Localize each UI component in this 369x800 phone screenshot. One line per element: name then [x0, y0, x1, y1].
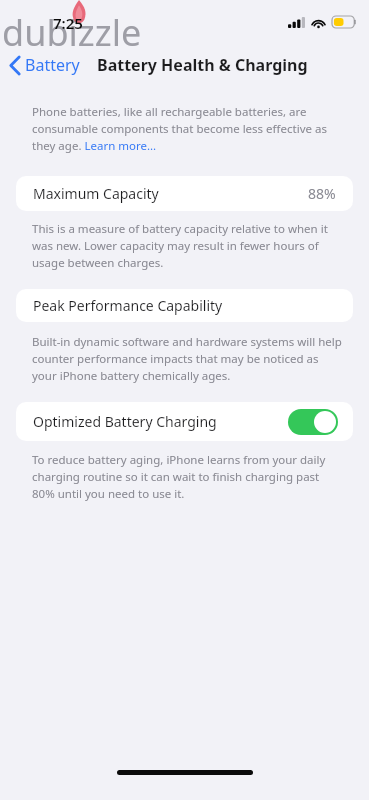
button[interactable]: Maximum Capacity	[16, 176, 353, 211]
button[interactable]: Battery	[6, 50, 84, 80]
button[interactable]: Peak Performance Capability	[16, 289, 353, 322]
staticText: Optimized Battery Charging	[33, 412, 217, 431]
staticText: Peak Performance Capability	[33, 296, 223, 315]
button[interactable]: Optimized Battery Charging toggle, on	[288, 409, 338, 435]
staticText: Phone batteries, like all rechargeable b…	[32, 104, 347, 154]
staticText: Battery Health & Charging	[97, 54, 308, 76]
staticText: This is a measure of battery capacity re…	[32, 221, 343, 271]
staticText: 88%	[308, 184, 336, 203]
staticText: Battery	[25, 54, 80, 76]
button[interactable]: Optimized Battery Charging	[16, 402, 353, 441]
staticText: To reduce battery aging, iPhone learns f…	[32, 452, 343, 502]
staticText: 7:25	[53, 13, 83, 33]
staticText: dubizzle	[2, 8, 142, 54]
staticText: Built-in dynamic software and hardware s…	[32, 334, 343, 384]
staticText: Maximum Capacity	[33, 184, 159, 203]
